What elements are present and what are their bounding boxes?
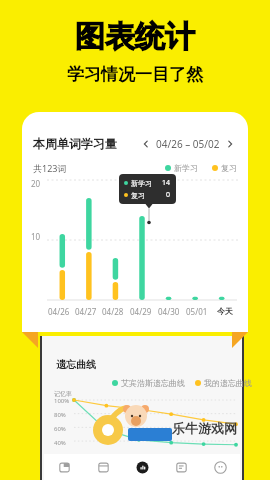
staticText: 80%: [54, 411, 66, 419]
staticText: 共123词: [33, 162, 67, 174]
staticText: 学习情况一目了然: [67, 64, 203, 85]
staticText: 艾宾浩斯遗忘曲线: [121, 378, 185, 388]
staticText: 20: [31, 178, 41, 189]
staticText: 乐牛游戏网: [172, 420, 237, 436]
staticText: 04/26: [48, 306, 70, 317]
staticText: 新学习: [131, 179, 152, 188]
staticText: 复习: [221, 163, 237, 173]
staticText: 04/26 – 05/02: [156, 137, 220, 151]
button[interactable]: 单词本: [44, 454, 84, 480]
staticText: 04/29: [130, 306, 152, 317]
staticText: 04/27: [75, 306, 97, 317]
staticText: 04/30: [158, 306, 180, 317]
button[interactable]: 复习: [84, 454, 123, 480]
button[interactable]: 下一周: [223, 137, 237, 151]
staticText: 记忆率: [54, 390, 72, 398]
staticText: 100%: [54, 397, 70, 405]
button[interactable]: 统计: [123, 454, 162, 480]
staticText: 05/01: [186, 306, 208, 317]
button[interactable]: 上一周: [139, 137, 153, 151]
staticText: 60%: [54, 425, 66, 433]
staticText: 遗忘曲线: [56, 358, 96, 371]
staticText: 04/28: [102, 306, 124, 317]
staticText: 0: [166, 190, 171, 200]
staticText: 14: [162, 178, 171, 188]
staticText: 新学习: [174, 163, 198, 173]
staticText: 10: [31, 231, 41, 242]
staticText: 我的遗忘曲线: [204, 378, 252, 388]
staticText: 复习: [131, 191, 145, 200]
button[interactable]: 报告: [162, 454, 201, 480]
staticText: 40%: [54, 439, 66, 447]
staticText: 本周单词学习量: [33, 136, 117, 151]
staticText: 图表统计: [75, 18, 195, 56]
staticText: 今天: [217, 306, 233, 316]
button[interactable]: 我的: [201, 454, 240, 480]
